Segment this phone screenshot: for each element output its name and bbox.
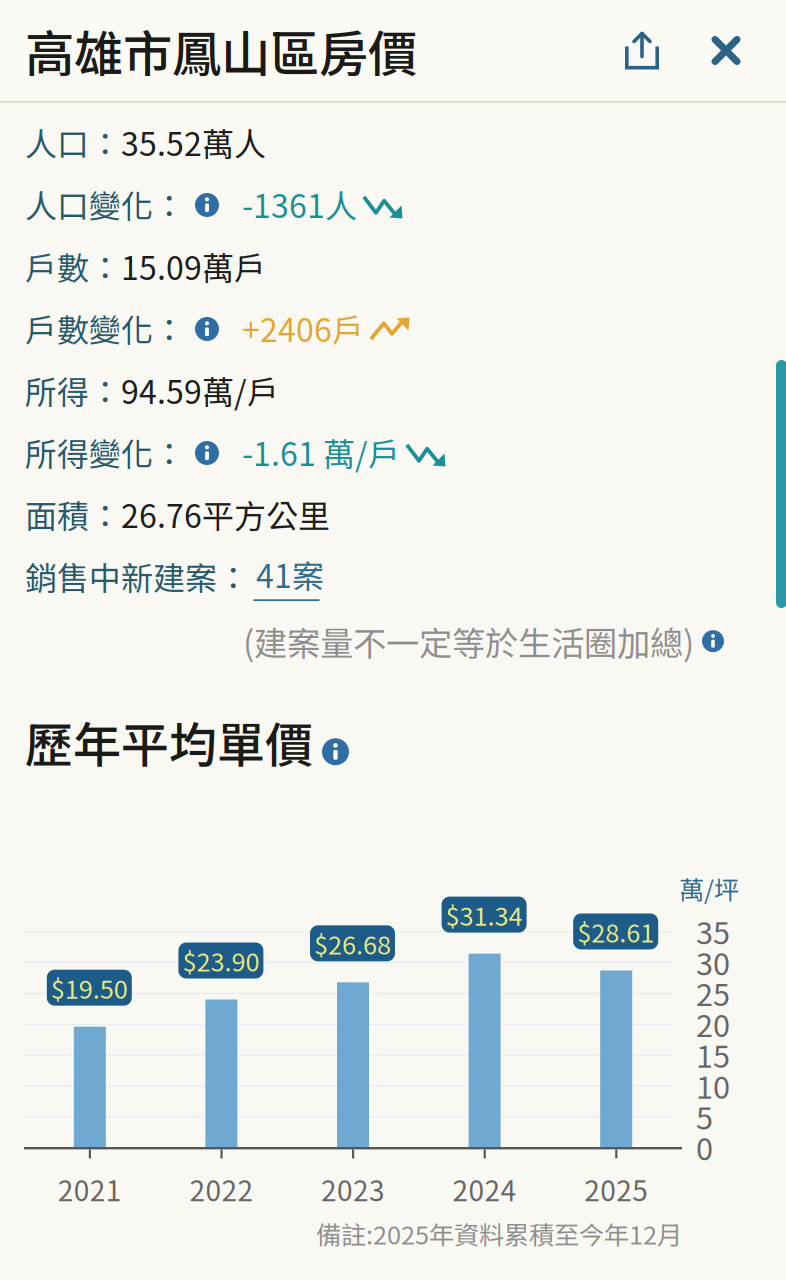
staticText: 94.59萬/戶 — [121, 367, 279, 413]
staticText: 26.76平方公里 — [121, 491, 330, 537]
staticText: 歷年平均單價 — [25, 707, 313, 776]
staticText: $26.68 — [314, 925, 391, 962]
staticText: -1.61 萬/戶 — [242, 429, 400, 475]
staticText: 2024 — [453, 1169, 517, 1209]
staticText: 35.52萬人 — [121, 119, 266, 165]
staticText: $23.90 — [182, 942, 259, 979]
staticText: 0 — [696, 1125, 713, 1169]
staticText: 戶數變化： — [25, 305, 185, 351]
staticText: 人口： — [25, 119, 121, 165]
button[interactable]: Close — [685, 9, 767, 91]
staticText: 30 — [696, 940, 730, 984]
staticText: 2025 — [584, 1169, 648, 1209]
staticText: 所得變化： — [25, 429, 185, 475]
staticText: 5 — [696, 1094, 713, 1138]
staticText: 35 — [696, 909, 730, 953]
staticText: +2406戶 — [242, 305, 364, 351]
staticText: 2022 — [189, 1169, 253, 1209]
staticText: 備註:2025年資料累積至今年12月 — [316, 1215, 682, 1252]
staticText: 15 — [696, 1032, 730, 1077]
button[interactable]: 41案 — [249, 551, 324, 601]
staticText: 2021 — [58, 1169, 122, 1209]
staticText: -1361人 — [242, 181, 357, 227]
staticText: 2023 — [321, 1169, 385, 1209]
staticText: 面積： — [25, 491, 121, 537]
staticText: (建案量不一定等於生活圈加總) — [243, 617, 694, 665]
staticText: 25 — [696, 970, 730, 1015]
staticText: 銷售中新建案： — [25, 553, 249, 599]
staticText: 41案 — [249, 551, 324, 597]
staticText: 所得： — [25, 367, 121, 413]
staticText: 10 — [696, 1063, 730, 1107]
staticText: $19.50 — [51, 969, 128, 1006]
staticText: 萬/坪 — [679, 870, 739, 907]
staticText: 20 — [696, 1001, 730, 1046]
staticText: $28.61 — [577, 913, 654, 950]
staticText: 戶數： — [25, 243, 121, 289]
staticText: $31.34 — [446, 896, 523, 933]
staticText: 人口變化： — [25, 181, 185, 227]
staticText: 15.09萬戶 — [121, 243, 266, 289]
staticText: 高雄市鳳山區房價 — [25, 15, 417, 86]
button[interactable]: Share — [599, 7, 685, 93]
